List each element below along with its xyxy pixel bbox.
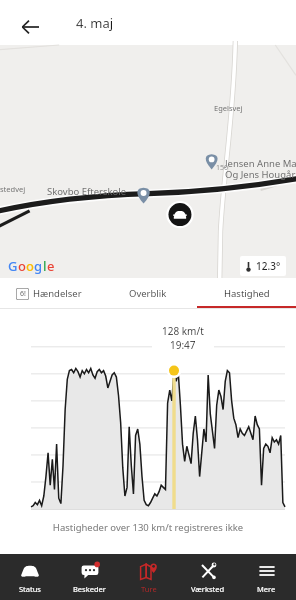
staticText: Værksted [191,584,225,594]
staticText: l [43,257,47,275]
staticText: Hændelser [33,287,82,300]
button[interactable]: 6! [0,278,98,309]
staticText: o [26,257,34,275]
staticText: Jensen Anne Ma [225,157,296,170]
staticText: Hastighed [224,287,270,300]
staticText: Skovbo Efterskole [47,185,127,198]
button[interactable]: Overblik [98,278,197,309]
button[interactable]: Ture [119,554,178,600]
staticText: Beskeder [73,584,106,594]
staticText: Overblik [129,287,167,300]
button[interactable]: Status [0,554,60,600]
staticText: 12.3° [256,259,281,273]
button[interactable]: Back [12,9,48,45]
staticText: g [34,257,43,275]
staticText: Mere [257,584,276,594]
button[interactable]: Værksted [178,554,237,600]
staticText: 150 [216,163,229,173]
staticText: 128 km/t [162,324,204,338]
button[interactable]: Mere [237,554,296,600]
staticText: Egelsvej [214,103,243,113]
staticText: Ture [141,584,157,594]
button[interactable]: 128 km/t [152,320,214,356]
staticText: 19:47 [170,338,196,352]
staticText: stedvej [0,184,26,194]
staticText: Og Jens Hougår [225,168,296,181]
staticText: 4. maj [76,14,114,32]
staticText: Status [19,584,41,594]
button[interactable]: Hastighed [197,278,296,309]
button[interactable]: Beskeder [60,554,119,600]
button[interactable]: 12.3° [240,256,286,276]
staticText: Hastigheder over 130 km/t registreres ik… [0,521,296,534]
staticText: 6! [20,289,26,299]
staticText: G [8,257,18,275]
staticText: o [18,257,26,275]
staticText: e [47,257,55,275]
